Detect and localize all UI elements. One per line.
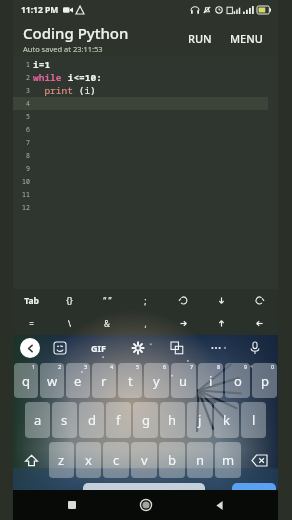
button[interactable]: 9 — [13, 162, 278, 175]
button[interactable]: y — [144, 363, 169, 398]
staticText: 7 — [26, 138, 30, 147]
button[interactable]: & — [88, 312, 126, 335]
staticText: , — [69, 499, 72, 510]
button[interactable]: 6 — [13, 123, 278, 136]
button[interactable]: English — [83, 483, 205, 517]
button[interactable]: 12 — [13, 201, 278, 214]
staticText: m — [222, 451, 235, 469]
button[interactable]: k — [214, 402, 239, 438]
button[interactable]: left — [164, 312, 202, 335]
button[interactable]: a — [25, 402, 50, 438]
button[interactable]: Shift — [15, 442, 47, 478]
button[interactable]: . — [207, 483, 230, 517]
staticText: 6 — [163, 363, 167, 370]
button[interactable]: down — [202, 312, 240, 335]
button[interactable]: up — [202, 289, 240, 312]
button[interactable]: t — [118, 363, 142, 398]
button[interactable]: “ ” — [88, 289, 126, 312]
button[interactable]: m — [215, 442, 241, 478]
button[interactable]: Back — [20, 338, 40, 358]
button[interactable]: b — [159, 442, 185, 478]
staticText: Coding Python — [23, 23, 129, 43]
button[interactable]: z — [49, 442, 74, 478]
button[interactable]: d — [79, 402, 104, 438]
button[interactable]: j — [187, 402, 212, 438]
staticText: l — [252, 411, 256, 429]
button[interactable]: v — [131, 442, 157, 478]
button[interactable]: 5 — [13, 110, 278, 123]
button[interactable]: Tab — [13, 289, 50, 312]
button[interactable]: emoji — [40, 335, 79, 361]
staticText: 12 — [22, 203, 30, 212]
button[interactable]: gif — [79, 335, 118, 361]
button[interactable]: 8 — [13, 149, 278, 162]
button[interactable]: settings — [118, 335, 157, 361]
button[interactable]: f — [106, 402, 131, 438]
staticText: v — [141, 451, 148, 469]
staticText: 2 — [58, 363, 62, 370]
button[interactable]: i — [198, 363, 223, 398]
button[interactable]: r — [92, 363, 116, 398]
staticText: English — [127, 493, 162, 507]
button[interactable]: Back — [204, 490, 234, 520]
staticText: “ ” — [103, 295, 112, 307]
button[interactable]: 2 — [13, 71, 278, 84]
staticText: & — [104, 318, 110, 329]
button[interactable]: more — [196, 335, 235, 361]
staticText: n — [196, 451, 205, 469]
button[interactable]: p — [252, 363, 277, 398]
button[interactable]: Enter — [232, 483, 276, 517]
button[interactable]: 11 — [13, 188, 278, 201]
button[interactable]: , — [126, 312, 164, 335]
button[interactable]: s — [52, 402, 77, 438]
staticText: , — [144, 318, 147, 329]
staticText: 11 — [22, 190, 30, 199]
staticText: c — [113, 451, 120, 469]
staticText: r — [101, 372, 107, 390]
button[interactable]: e — [66, 363, 90, 398]
button[interactable]: 4 — [13, 97, 268, 110]
staticText: 5 — [136, 363, 140, 370]
button[interactable]: right — [240, 312, 278, 335]
button[interactable]: ?123 — [15, 483, 56, 517]
button[interactable]: {} — [50, 289, 88, 312]
staticText: a — [34, 411, 42, 429]
button[interactable]: n — [187, 442, 213, 478]
button[interactable]: h — [160, 402, 185, 438]
button[interactable]: = — [13, 312, 50, 335]
button[interactable]: q — [14, 363, 38, 398]
staticText: o — [234, 372, 242, 390]
button[interactable]: g — [133, 402, 158, 438]
button[interactable]: 7 — [13, 136, 278, 149]
staticText: k — [223, 411, 230, 429]
button[interactable]: RUN — [183, 27, 217, 50]
button[interactable]: mic — [235, 335, 274, 361]
button[interactable]: undo — [164, 289, 202, 312]
staticText: t — [128, 372, 133, 390]
button[interactable]: w — [40, 363, 64, 398]
button[interactable]: x — [76, 442, 101, 478]
staticText: 9 — [244, 363, 248, 370]
button[interactable]: Emoji — [58, 483, 81, 517]
staticText: Auto saved at 23:11:53 — [23, 44, 103, 54]
staticText: h — [168, 411, 177, 429]
staticText: Tab — [24, 295, 39, 307]
button[interactable]: o — [225, 363, 250, 398]
button[interactable]: 1 — [13, 58, 278, 71]
button[interactable]: Home — [131, 490, 161, 520]
button[interactable]: 3 — [13, 84, 278, 97]
button[interactable]: ; — [126, 289, 164, 312]
button[interactable]: MENU — [225, 27, 268, 50]
button[interactable]: Backspace — [243, 442, 276, 478]
staticText: . — [217, 493, 220, 508]
button[interactable]: c — [103, 442, 129, 478]
button[interactable]: redo — [240, 289, 278, 312]
button[interactable]: \ — [50, 312, 88, 335]
button[interactable]: l — [241, 402, 266, 438]
button[interactable]: Recents — [57, 490, 87, 520]
button[interactable]: translate — [157, 335, 196, 361]
staticText: 3 — [84, 363, 88, 370]
button[interactable]: 10 — [13, 175, 278, 188]
button[interactable]: u — [171, 363, 196, 398]
staticText: 2 — [26, 73, 30, 82]
